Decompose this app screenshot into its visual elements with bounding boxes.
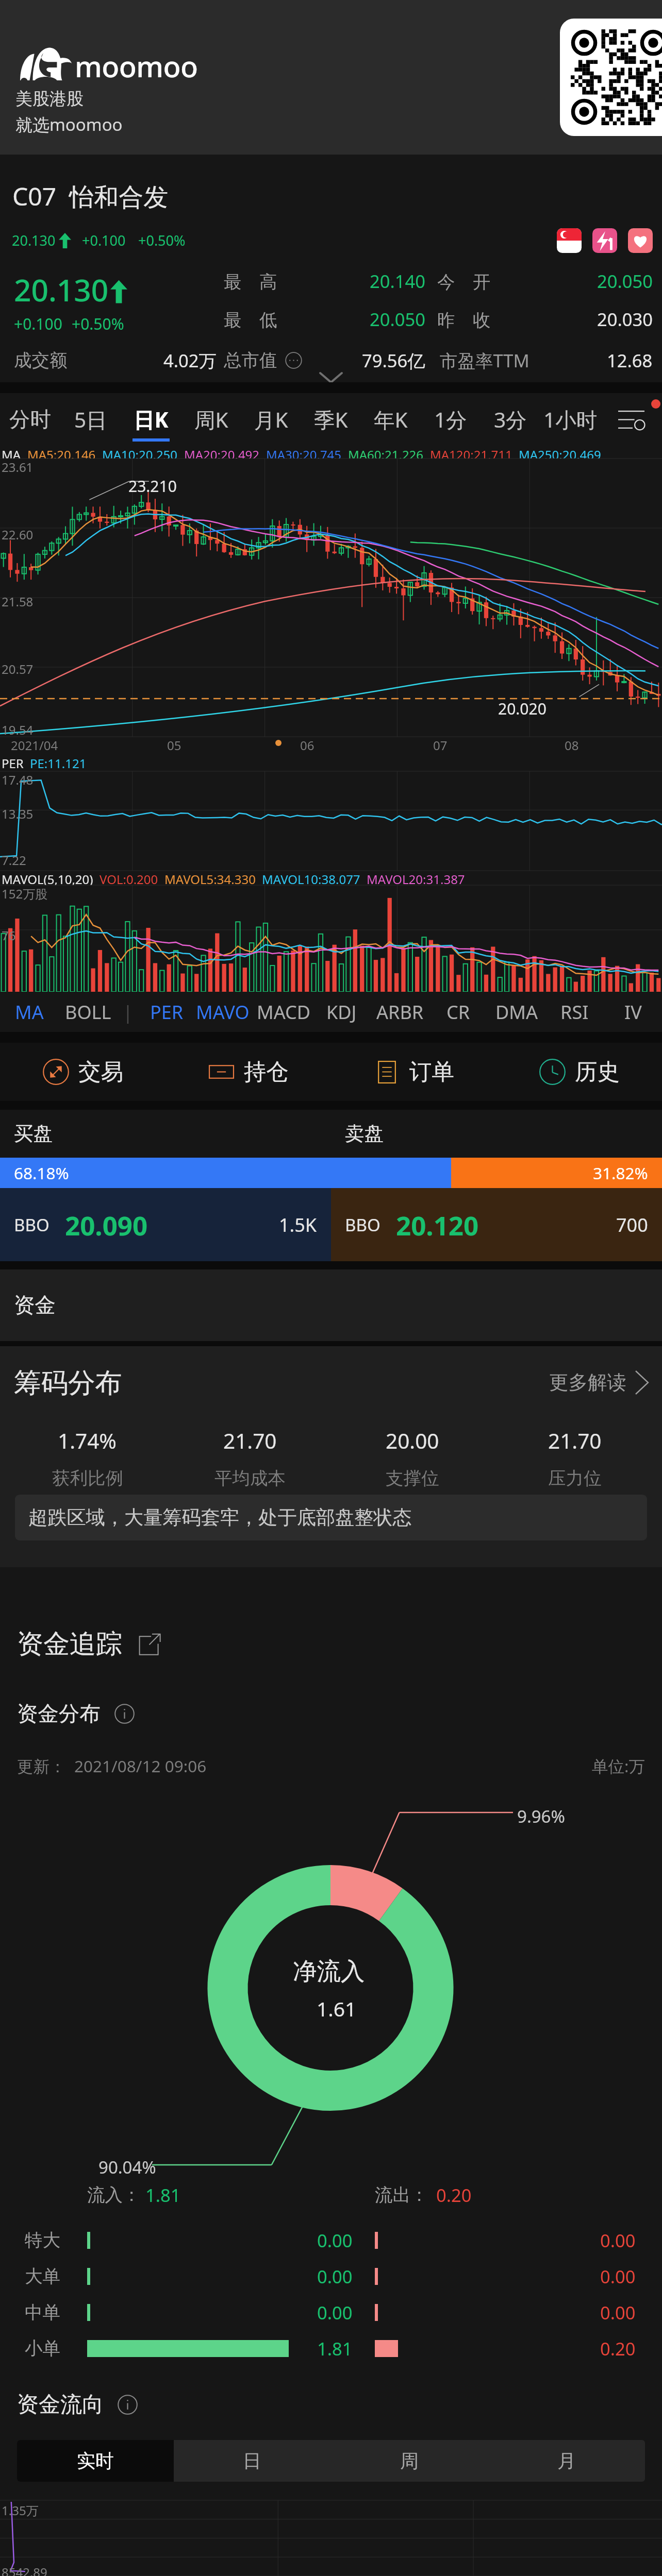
- button[interactable]: 1小时: [540, 393, 600, 446]
- staticText: 5日: [74, 405, 107, 434]
- staticText: +0.50%: [138, 231, 186, 250]
- staticText: +0.100: [14, 313, 62, 334]
- staticText: 日K: [134, 405, 169, 434]
- button[interactable]: CR: [429, 992, 487, 1032]
- staticText: PER: [150, 999, 184, 1025]
- button[interactable]: 1分: [421, 393, 481, 446]
- staticText: 1.81: [145, 2183, 181, 2207]
- staticText: 05: [167, 737, 181, 754]
- staticText: 支撑位: [386, 1467, 439, 1489]
- staticText: 1.81: [317, 2336, 353, 2361]
- staticText: MAVOL(5,10,20): [2, 871, 93, 885]
- button[interactable]: QR code: [560, 19, 662, 136]
- staticText: PER: [2, 755, 24, 771]
- button[interactable]: 年K: [361, 393, 421, 446]
- button[interactable]: Market SG: [557, 228, 582, 253]
- button[interactable]: 月: [488, 2440, 645, 2482]
- staticText: 更多解读: [549, 1370, 626, 1395]
- staticText: MA30:20.745: [266, 446, 342, 459]
- button[interactable]: BOLL: [59, 992, 118, 1032]
- staticText: 0.00: [317, 2300, 353, 2325]
- staticText: MA5:20.146: [27, 446, 96, 459]
- button[interactable]: Open detail: [138, 1633, 161, 1656]
- staticText: +0.50%: [72, 313, 124, 334]
- staticText: 06: [300, 737, 315, 754]
- staticText: 卖盘: [345, 1122, 384, 1146]
- staticText: 年K: [374, 405, 408, 434]
- staticText: MA250:20.469: [519, 446, 601, 459]
- staticText: KDJ: [326, 999, 357, 1025]
- button[interactable]: 交易: [0, 1043, 165, 1101]
- staticText: 20.090: [65, 1207, 148, 1243]
- button[interactable]: 历史: [496, 1043, 662, 1101]
- staticText: 最 高: [224, 269, 277, 293]
- button[interactable]: 3分: [481, 393, 540, 446]
- staticText: 成交额: [14, 349, 68, 371]
- button[interactable]: Level 1 quote: [592, 228, 617, 253]
- staticText: 0.20: [600, 2336, 636, 2361]
- staticText: 周K: [194, 405, 228, 434]
- staticText: 9.96%: [517, 1805, 565, 1828]
- staticText: 月K: [254, 405, 288, 434]
- button[interactable]: ARBR: [371, 992, 429, 1032]
- staticText: MAVOL10:38.077: [262, 871, 360, 885]
- staticText: 22.60: [2, 526, 34, 543]
- button[interactable]: MAVOL: [196, 992, 254, 1032]
- staticText: 20.050: [597, 269, 653, 293]
- staticText: 持仓: [244, 1058, 289, 1086]
- staticText: 昨 收: [437, 307, 491, 331]
- staticText: 订单: [409, 1058, 454, 1086]
- staticText: 20.020: [498, 698, 547, 719]
- button[interactable]: 日K: [121, 393, 181, 446]
- button[interactable]: KDJ: [312, 992, 371, 1032]
- staticText: MACD: [257, 999, 310, 1025]
- button[interactable]: 周K: [181, 393, 241, 446]
- button[interactable]: PER: [138, 992, 196, 1032]
- staticText: 0.00: [600, 2264, 636, 2289]
- button[interactable]: Chart settings: [600, 393, 662, 446]
- staticText: 资金: [14, 1292, 56, 1318]
- staticText: 1分: [434, 405, 467, 434]
- staticText: 19.54: [2, 721, 34, 738]
- staticText: 中单: [25, 2301, 60, 2324]
- button[interactable]: 周: [330, 2440, 488, 2482]
- button[interactable]: 实时: [17, 2440, 174, 2482]
- staticText: 21.70: [223, 1427, 277, 1455]
- staticText: 流入：: [87, 2184, 141, 2206]
- button[interactable]: RSI: [545, 992, 604, 1032]
- button[interactable]: 分时: [0, 393, 60, 446]
- button[interactable]: 订单: [331, 1043, 496, 1101]
- staticText: 0.00: [600, 2300, 636, 2325]
- staticText: 07: [433, 737, 448, 754]
- staticText: MA: [2, 446, 21, 459]
- button[interactable]: DMA: [487, 992, 545, 1032]
- staticText: 13.35: [2, 805, 34, 822]
- button[interactable]: MACD: [254, 992, 312, 1032]
- staticText: 21.70: [548, 1427, 602, 1455]
- button[interactable]: BBO: [331, 1188, 662, 1261]
- staticText: MA60:21.226: [348, 446, 424, 459]
- staticText: MA10:20.250: [102, 446, 178, 459]
- button[interactable]: 日: [174, 2440, 330, 2482]
- staticText: 90.04%: [98, 2156, 156, 2179]
- staticText: 1.74%: [58, 1427, 117, 1455]
- staticText: 2021/04: [11, 737, 58, 754]
- button[interactable]: 筹码分布: [0, 1346, 662, 1419]
- staticText: MA: [15, 999, 44, 1025]
- button[interactable]: IV: [604, 992, 662, 1032]
- staticText: 08: [565, 737, 579, 754]
- button[interactable]: 季K: [301, 393, 361, 446]
- button[interactable]: 持仓: [165, 1043, 331, 1101]
- button[interactable]: 月K: [241, 393, 301, 446]
- button[interactable]: Favorite: [628, 228, 653, 253]
- staticText: 20.050: [370, 307, 425, 331]
- staticText: 平均成本: [214, 1467, 286, 1489]
- button[interactable]: |: [118, 992, 138, 1032]
- staticText: 压力位: [548, 1467, 602, 1489]
- button[interactable]: 5日: [60, 393, 121, 446]
- staticText: C07 怡和合发: [12, 179, 169, 213]
- staticText: 总市值: [224, 349, 277, 371]
- button[interactable]: MA: [0, 992, 59, 1032]
- button[interactable]: BBO: [0, 1188, 331, 1261]
- button[interactable]: Expand quotes: [0, 372, 662, 382]
